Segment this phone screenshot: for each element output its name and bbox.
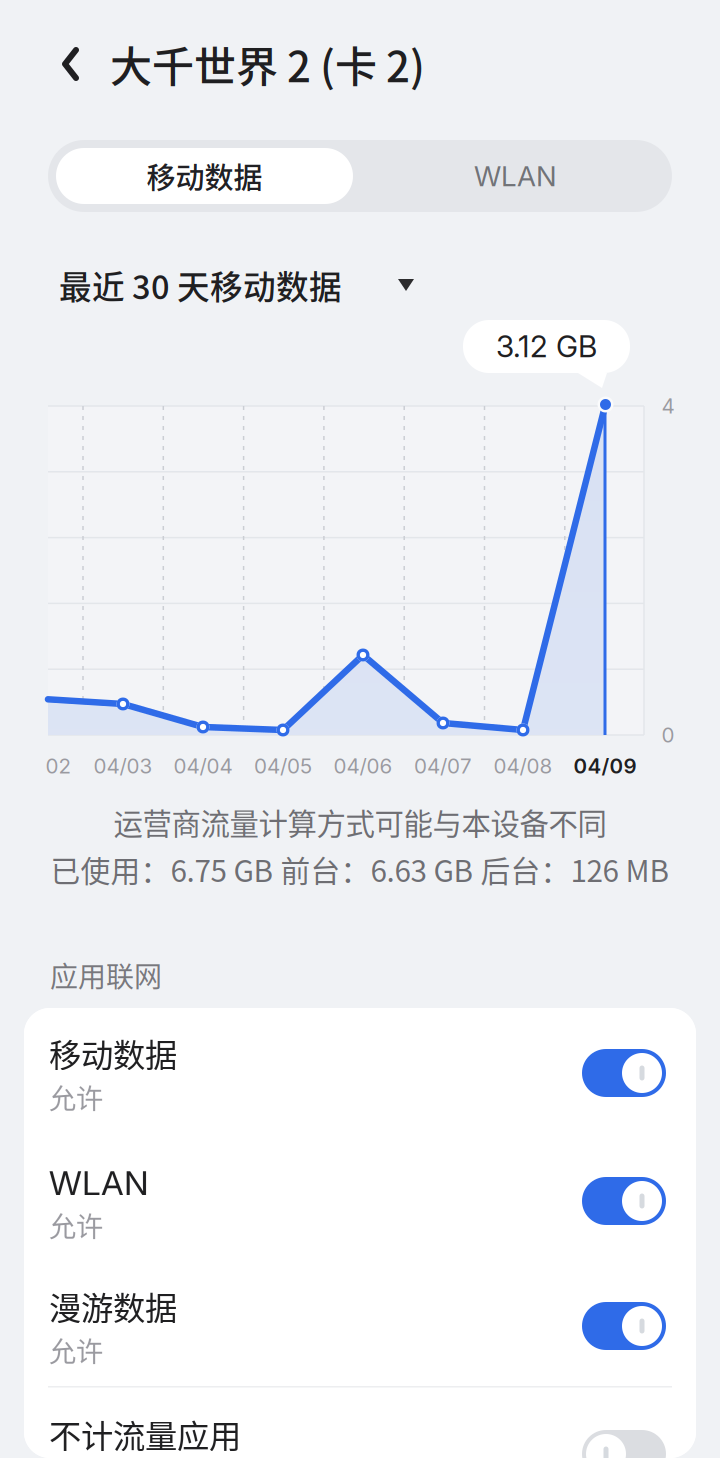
- staticText: 不计流量应用: [49, 1411, 241, 1457]
- button[interactable]: 移动数据: [56, 148, 353, 204]
- button[interactable]: 不计流量应用: [24, 1389, 696, 1458]
- staticText: 允许: [49, 1330, 103, 1370]
- staticText: 04/08: [493, 753, 552, 778]
- staticText: 允许: [49, 1205, 103, 1245]
- staticText: 04/09: [573, 753, 636, 778]
- button[interactable]: 最近 30 天移动数据: [59, 261, 459, 309]
- staticText: 3.12 GB: [496, 328, 597, 365]
- staticText: 0: [661, 722, 674, 747]
- staticText: 02: [45, 753, 70, 778]
- staticText: 已使用：6.75 GB 前台：6.63 GB 后台：126 MB: [50, 847, 669, 890]
- staticText: 04/03: [93, 753, 152, 778]
- staticText: 移动数据: [49, 1030, 177, 1076]
- staticText: 04/07: [414, 753, 472, 778]
- staticText: 应用联网: [50, 955, 162, 995]
- staticText: 04/04: [173, 753, 232, 778]
- staticText: 大千世界 2 (卡 2): [110, 34, 425, 94]
- staticText: 最近 30 天移动数据: [59, 261, 342, 309]
- staticText: 04/05: [254, 753, 312, 778]
- staticText: 漫游数据: [49, 1283, 177, 1329]
- staticText: WLAN: [49, 1162, 149, 1203]
- button[interactable]: Back: [40, 25, 101, 103]
- staticText: 4: [661, 393, 674, 418]
- staticText: 允许: [49, 1077, 103, 1117]
- staticText: WLAN: [474, 159, 557, 193]
- staticText: 04/06: [333, 753, 392, 778]
- button[interactable]: 漫游数据: [24, 1261, 696, 1386]
- staticText: 运营商流量计算方式可能与本设备不同: [113, 801, 606, 843]
- button[interactable]: WLAN: [367, 148, 664, 204]
- button[interactable]: WLAN: [24, 1136, 696, 1261]
- staticText: 移动数据: [146, 155, 262, 197]
- button[interactable]: 移动数据: [24, 1008, 696, 1133]
